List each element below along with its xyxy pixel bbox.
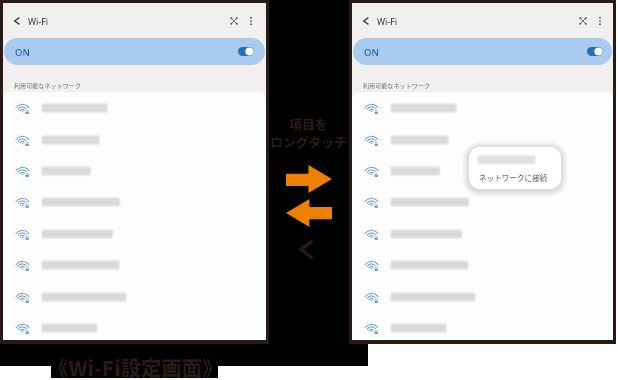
staticText: 《Wi-Fi設定画面》 <box>48 352 223 378</box>
button[interactable]: More options <box>591 12 609 30</box>
staticText: Wi-Fi <box>28 16 49 28</box>
button[interactable] <box>352 218 613 249</box>
button[interactable] <box>3 281 266 312</box>
staticText: ネットワークに接続 <box>479 172 548 183</box>
button[interactable] <box>3 92 266 123</box>
staticText: 項目を ロングタッチ <box>270 114 347 150</box>
button[interactable] <box>352 281 613 312</box>
button[interactable] <box>352 186 613 217</box>
button[interactable] <box>3 124 266 155</box>
button[interactable] <box>3 249 266 280</box>
button[interactable] <box>352 249 613 280</box>
button[interactable]: ネットワークに接続 <box>469 147 561 189</box>
button[interactable]: ON <box>353 38 612 65</box>
button[interactable] <box>3 312 266 340</box>
staticText: ON <box>364 46 379 59</box>
button[interactable] <box>352 312 613 340</box>
button[interactable] <box>352 124 613 155</box>
button[interactable] <box>3 218 266 249</box>
button[interactable] <box>3 186 266 217</box>
staticText: ON <box>15 46 30 59</box>
button[interactable]: More options <box>242 12 260 30</box>
staticText: Wi-Fi <box>377 16 398 28</box>
button[interactable]: Back <box>359 14 373 28</box>
button[interactable] <box>3 155 266 186</box>
button[interactable]: Smart View <box>225 12 243 30</box>
button[interactable]: ON <box>4 38 265 65</box>
button[interactable] <box>352 155 613 186</box>
staticText: 利用可能なネットワーク <box>14 81 82 90</box>
button[interactable]: Smart View <box>574 12 592 30</box>
staticText: 利用可能なネットワーク <box>363 81 431 90</box>
button[interactable]: Back <box>10 14 24 28</box>
button[interactable] <box>352 92 613 123</box>
